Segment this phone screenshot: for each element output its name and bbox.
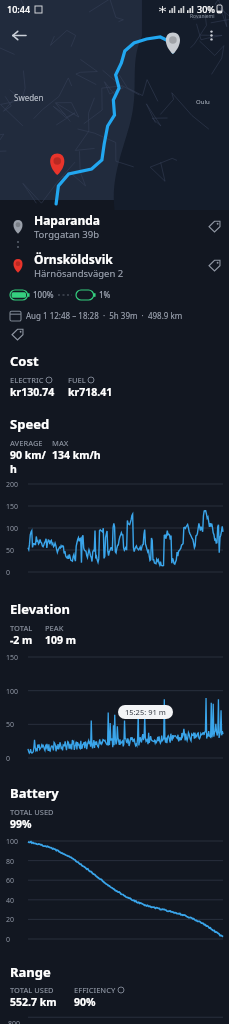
staticText: 40	[6, 896, 15, 906]
staticText: 60	[6, 876, 15, 886]
staticText: Örnsköldsvik	[34, 251, 113, 267]
staticText: 20	[6, 915, 15, 925]
staticText: 10:44	[7, 3, 31, 15]
button[interactable]: Haparanda	[0, 208, 229, 241]
staticText: 100	[6, 837, 19, 847]
staticText: EFFICIENCY	[74, 985, 116, 995]
staticText: TOTAL USED	[10, 807, 54, 817]
staticText: 200	[6, 480, 19, 490]
staticText: 0	[6, 754, 11, 764]
button[interactable]: Back	[5, 22, 31, 48]
staticText: FUEL	[68, 375, 86, 385]
staticText: 150	[6, 502, 19, 512]
staticText: 50	[6, 546, 15, 556]
staticText: Sweden	[14, 92, 44, 103]
staticText: 0	[6, 568, 11, 578]
button[interactable]: Tags	[9, 326, 25, 342]
staticText: 134 km/h	[52, 448, 101, 462]
staticText: Rovaniemi	[190, 13, 215, 20]
staticText: 800	[8, 1019, 21, 1024]
staticText: Battery	[10, 784, 59, 802]
staticText: 30%	[197, 3, 215, 15]
staticText: Oulu	[196, 98, 210, 106]
staticText: Haparanda	[34, 212, 101, 228]
staticText: Aug 1 12:48 – 18:28 · 5h 39m · 498.9 km	[26, 310, 183, 321]
staticText: 90%	[74, 995, 96, 1009]
staticText: 100	[6, 687, 19, 697]
staticText: AVERAGE	[10, 438, 43, 448]
staticText: 50	[6, 720, 15, 730]
staticText: 150	[6, 653, 19, 663]
staticText: TOTAL USED	[10, 985, 54, 995]
staticText: Cost	[10, 352, 39, 370]
staticText: 99%	[10, 817, 32, 831]
staticText: -2 m	[10, 633, 33, 647]
staticText: 15:25: 91 m	[125, 707, 166, 717]
staticText: 1%	[99, 289, 111, 300]
staticText: 100%	[33, 289, 54, 300]
staticText: MAX	[52, 438, 69, 448]
staticText: PEAK	[45, 623, 64, 633]
staticText: ELECTRIC	[10, 375, 44, 385]
staticText: Speed	[10, 415, 50, 433]
staticText: Range	[10, 963, 51, 981]
staticText: kr718.41	[68, 385, 113, 399]
button[interactable]: More options	[198, 22, 224, 48]
staticText: 80	[6, 857, 15, 867]
staticText: 100	[6, 524, 19, 534]
staticText: TOTAL	[10, 623, 33, 633]
staticText: 90 km/h	[10, 448, 52, 476]
staticText: kr130.74	[10, 385, 55, 399]
button[interactable]: Örnsköldsvik	[0, 251, 229, 280]
staticText: Torggatan 39b	[34, 228, 100, 241]
staticText: 109 m	[45, 633, 76, 647]
staticText: Elevation	[10, 600, 70, 618]
staticText: 0	[6, 935, 11, 945]
staticText: 552.7 km	[10, 995, 57, 1009]
staticText: Härnösandsvägen 2	[34, 267, 124, 280]
